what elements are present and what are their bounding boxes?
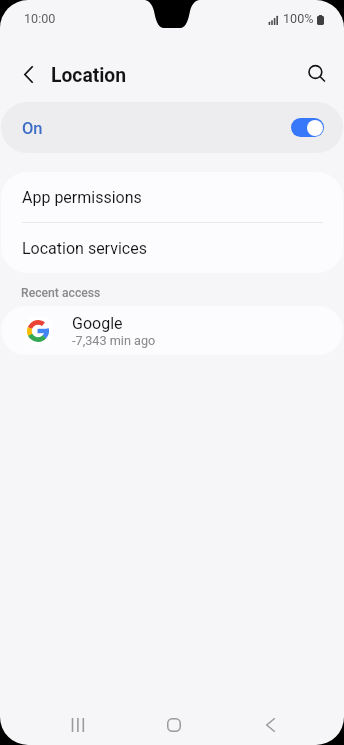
staticText: Recent access bbox=[21, 286, 101, 300]
button[interactable]: Recent apps bbox=[54, 701, 102, 745]
staticText: Location bbox=[51, 64, 127, 87]
staticText: -7,343 min ago bbox=[72, 333, 156, 348]
button[interactable]: Location services bbox=[1, 223, 343, 273]
button[interactable]: Google bbox=[1, 306, 343, 355]
button[interactable]: On bbox=[1, 102, 343, 153]
button[interactable]: Search bbox=[298, 55, 336, 93]
staticText: Google bbox=[72, 314, 123, 333]
staticText: Location services bbox=[22, 239, 147, 258]
button[interactable]: Home bbox=[150, 701, 198, 745]
staticText: 10:00 bbox=[24, 11, 56, 26]
button[interactable]: App permissions bbox=[1, 172, 343, 222]
button[interactable]: Location on/off bbox=[291, 118, 324, 137]
staticText: 100% bbox=[283, 11, 314, 26]
staticText: App permissions bbox=[22, 188, 142, 207]
staticText: On bbox=[22, 119, 43, 138]
button[interactable]: Back bbox=[246, 701, 294, 745]
button[interactable]: Navigate up bbox=[9, 55, 47, 93]
